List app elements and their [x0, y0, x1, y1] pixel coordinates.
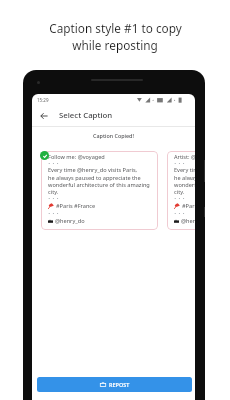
button[interactable]: Artist: @henry_do: [167, 151, 195, 230]
staticText: Every time @henry_do visits Paris, he al…: [48, 166, 150, 195]
staticText: #Paris #France: [182, 202, 195, 210]
button[interactable]: REPOST: [37, 377, 192, 392]
staticText: Caption Copied!: [32, 132, 195, 139]
staticText: Follow me: @voyaged: [48, 153, 105, 161]
staticText: #Paris #France: [56, 202, 96, 210]
staticText: Every time @henry_do visits Paris, he al…: [174, 166, 195, 195]
staticText: @henry_do: [181, 217, 195, 225]
button[interactable]: Follow me: @voyaged: [41, 151, 158, 230]
staticText: Caption style #1 to copy: [49, 20, 182, 36]
staticText: @henry_do: [55, 217, 85, 225]
staticText: Artist: @henry_do: [174, 153, 195, 161]
staticText: 15:29: [37, 97, 49, 103]
staticText: REPOST: [109, 381, 130, 388]
staticText: Select Caption: [59, 110, 113, 121]
staticText: while reposting: [72, 37, 158, 53]
button[interactable]: Back: [38, 110, 50, 122]
